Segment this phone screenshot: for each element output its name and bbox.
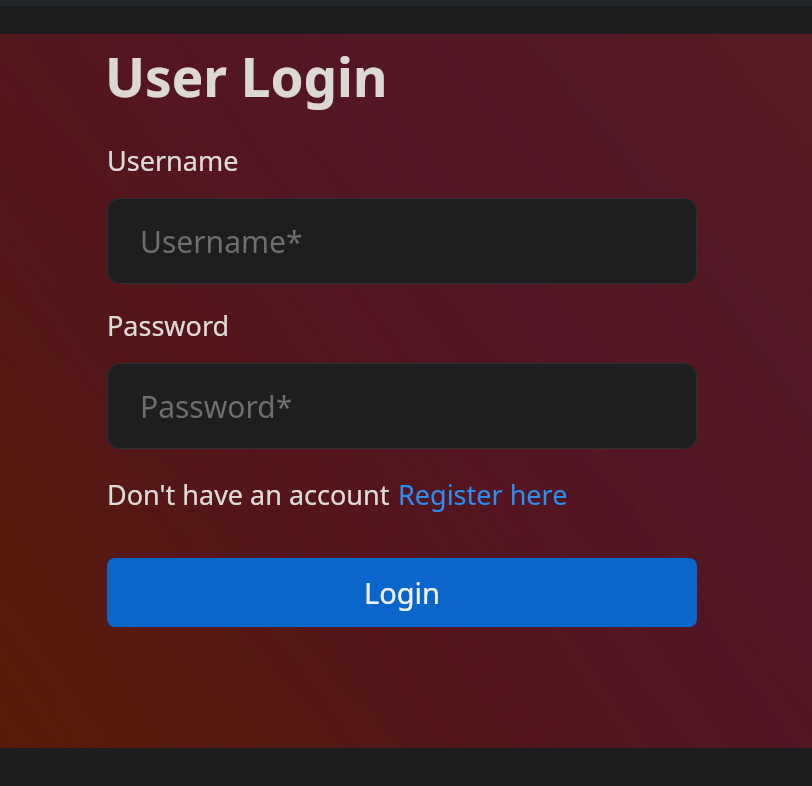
staticText: Login [364,573,440,612]
button[interactable]: Username* [107,198,697,284]
button[interactable]: Login [107,558,697,627]
staticText: Username* [140,221,303,262]
staticText: Register here [398,476,568,513]
staticText: Username [107,142,239,179]
staticText: Don't have an account [107,476,390,513]
staticText: User Login [105,40,388,112]
button[interactable]: Password* [107,363,697,449]
button[interactable]: Register here [398,476,568,513]
staticText: Password [107,307,230,344]
staticText: Password* [140,386,293,427]
